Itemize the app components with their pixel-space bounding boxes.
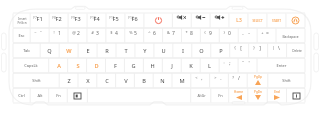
button[interactable]: Screenshot: [287, 88, 306, 103]
button[interactable]: Z: [59, 73, 78, 88]
button[interactable]: K: [181, 58, 200, 73]
button[interactable]: Enter: [257, 58, 305, 73]
staticText: :: [223, 60, 225, 65]
button[interactable]: {: [230, 43, 249, 58]
button[interactable]: O: [192, 43, 211, 58]
staticText: S: [76, 62, 80, 70]
button[interactable]: F: [106, 58, 125, 73]
button[interactable]: *: [181, 28, 200, 43]
button[interactable]: Backspace: [276, 28, 305, 43]
button[interactable]: L: [200, 58, 219, 73]
staticText: %: [129, 30, 133, 35]
button[interactable]: |: [268, 43, 287, 58]
button[interactable]: Insert: [13, 13, 30, 28]
button[interactable]: F7: [30, 13, 49, 28]
staticText: F9: [71, 15, 75, 19]
button[interactable]: Power: [144, 13, 173, 28]
button[interactable]: (: [200, 28, 219, 43]
button[interactable]: +: [257, 28, 276, 43]
button[interactable]: Shift: [13, 73, 59, 88]
button[interactable]: End: [267, 88, 286, 103]
button[interactable]: J: [162, 58, 181, 73]
button[interactable]: Page Up: [247, 73, 268, 88]
staticText: START: [272, 19, 281, 23]
button[interactable]: Fn: [211, 88, 229, 103]
button[interactable]: N: [153, 73, 172, 88]
staticText: N: [160, 77, 165, 85]
button[interactable]: S: [68, 58, 87, 73]
button[interactable]: Q: [40, 43, 59, 58]
button[interactable]: }: [249, 43, 268, 58]
button[interactable]: >: [210, 73, 229, 88]
button[interactable]: %: [125, 28, 144, 43]
button[interactable]: CapsLk: [13, 58, 49, 73]
button[interactable]: F8: [49, 13, 68, 28]
button[interactable]: E: [78, 43, 97, 58]
staticText: F1: [36, 15, 43, 23]
button[interactable]: Y: [135, 43, 154, 58]
staticText: |: [272, 45, 275, 50]
button[interactable]: Volume up: [210, 13, 229, 28]
staticText: Delete: [292, 49, 302, 53]
staticText: D: [94, 62, 99, 70]
button[interactable]: START: [267, 13, 286, 28]
button[interactable]: &: [163, 28, 182, 43]
staticText: 7: [172, 30, 175, 37]
staticText: F12: [128, 15, 134, 19]
button[interactable]: ": [238, 58, 257, 73]
button[interactable]: L3: [229, 13, 248, 28]
button[interactable]: M: [172, 73, 191, 88]
button[interactable]: ): [219, 28, 238, 43]
button[interactable]: Esc: [13, 28, 30, 43]
button[interactable]: P: [211, 43, 230, 58]
button[interactable]: :: [219, 58, 238, 73]
button[interactable]: $: [106, 28, 125, 43]
button[interactable]: Menu: [67, 88, 87, 103]
staticText: SELECT: [252, 19, 263, 23]
button[interactable]: R: [97, 43, 116, 58]
button[interactable]: V: [116, 73, 135, 88]
button[interactable]: @: [68, 28, 87, 43]
button[interactable]: F10: [87, 13, 106, 28]
button[interactable]: Home: [229, 88, 248, 103]
button[interactable]: !: [49, 28, 68, 43]
button[interactable]: Xbox Guide: [286, 13, 305, 28]
button[interactable]: C: [97, 73, 116, 88]
button[interactable]: Alt: [30, 88, 49, 103]
button[interactable]: Space: [87, 88, 190, 103]
button[interactable]: _: [238, 28, 257, 43]
button[interactable]: Ctrl: [13, 88, 30, 103]
button[interactable]: Mute: [172, 13, 191, 28]
button[interactable]: Tab: [13, 43, 40, 58]
button[interactable]: F12: [125, 13, 144, 28]
staticText: L3: [236, 17, 242, 24]
button[interactable]: ?: [228, 73, 247, 88]
button[interactable]: D: [87, 58, 106, 73]
staticText: 0: [228, 30, 231, 37]
button[interactable]: X: [78, 73, 97, 88]
button[interactable]: #: [87, 28, 106, 43]
staticText: J: [171, 62, 173, 70]
button[interactable]: <: [191, 73, 210, 88]
button[interactable]: H: [143, 58, 162, 73]
button[interactable]: ~: [30, 28, 49, 43]
button[interactable]: A: [49, 58, 68, 73]
button[interactable]: Shift: [268, 73, 305, 88]
button[interactable]: Page Down: [248, 88, 268, 103]
button[interactable]: T: [116, 43, 135, 58]
button[interactable]: F11: [106, 13, 125, 28]
button[interactable]: B: [134, 73, 153, 88]
button[interactable]: F9: [68, 13, 87, 28]
button[interactable]: I: [173, 43, 192, 58]
button[interactable]: Volume down: [191, 13, 210, 28]
button[interactable]: SELECT: [248, 13, 267, 28]
button[interactable]: AltGr: [191, 88, 211, 103]
button[interactable]: Delete: [287, 43, 306, 58]
button[interactable]: G: [124, 58, 143, 73]
button[interactable]: ^: [144, 28, 163, 43]
staticText: W: [66, 47, 72, 55]
button[interactable]: U: [154, 43, 173, 58]
staticText: <: [195, 75, 198, 80]
button[interactable]: Fn: [49, 88, 68, 103]
button[interactable]: W: [59, 43, 78, 58]
